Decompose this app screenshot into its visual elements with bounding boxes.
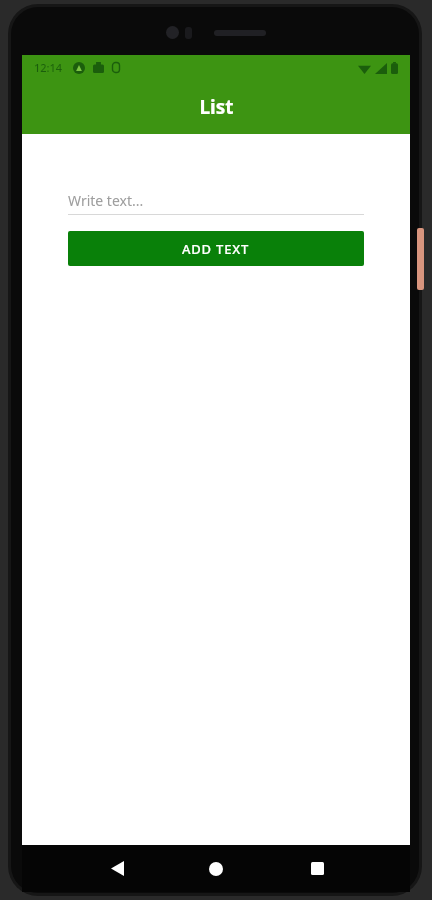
button[interactable]: Back	[97, 845, 137, 892]
button[interactable]: Home	[196, 845, 236, 892]
button[interactable]: ADD TEXT	[68, 231, 364, 266]
staticText: 12:14	[34, 60, 63, 75]
button[interactable]: Recent apps	[297, 845, 337, 892]
staticText: ADD TEXT	[182, 240, 250, 258]
staticText: List	[199, 94, 234, 120]
button[interactable]: Write text...	[68, 186, 364, 215]
staticText: Write text...	[68, 191, 144, 210]
